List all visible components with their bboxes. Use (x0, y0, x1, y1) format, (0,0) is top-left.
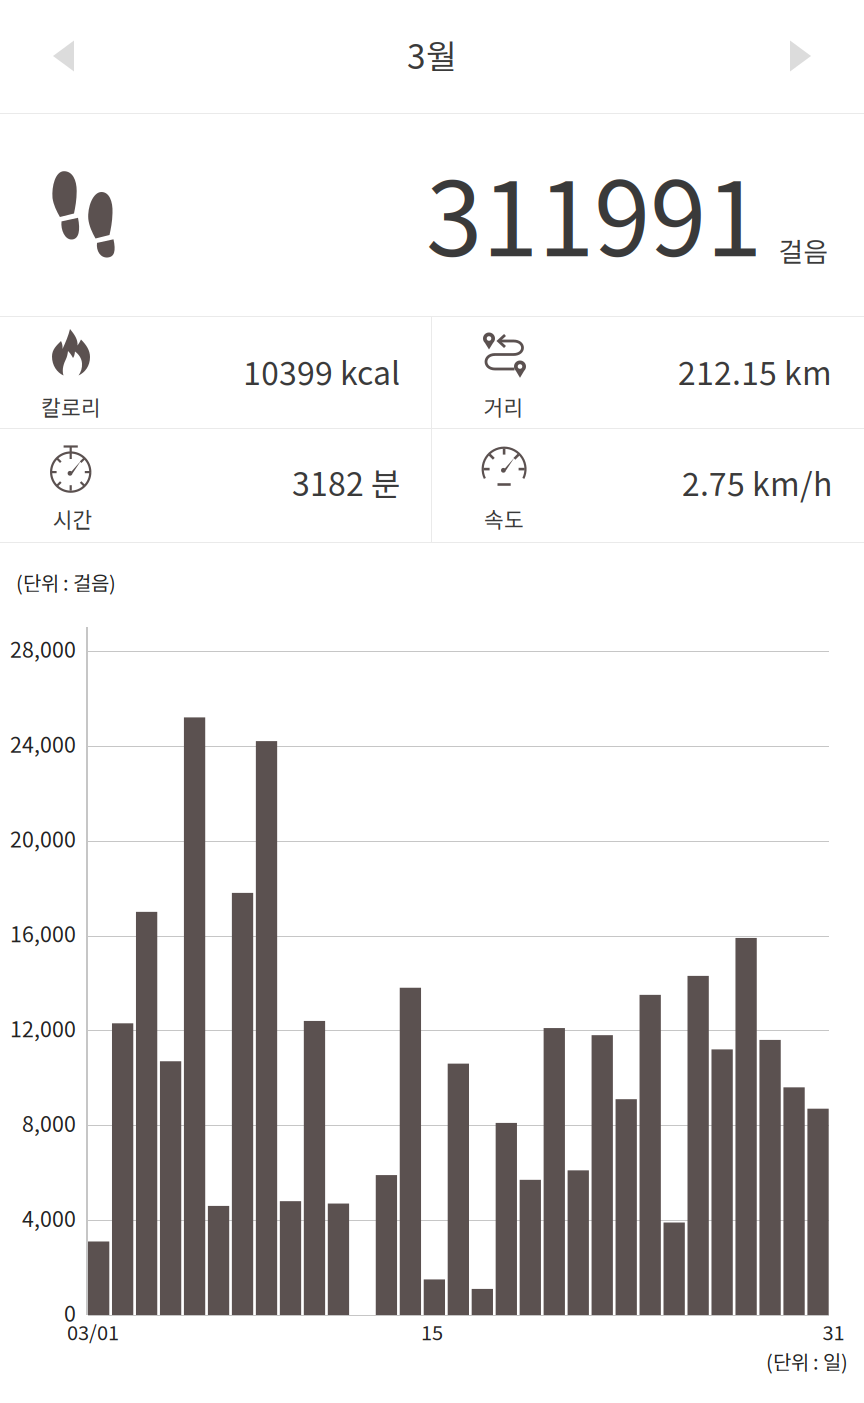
staticText: 시간 (52, 503, 92, 533)
staticText: 12,000 (10, 1013, 76, 1043)
staticText: 20,000 (10, 823, 76, 853)
staticText: 속도 (484, 503, 524, 533)
staticText: 4,000 (22, 1203, 76, 1233)
staticText: 3182 분 (292, 459, 400, 505)
staticText: 2.75 km/h (682, 459, 832, 505)
staticText: 16,000 (10, 918, 76, 948)
staticText: 10399 kcal (243, 348, 400, 394)
staticText: 거리 (483, 391, 523, 421)
staticText: 28,000 (10, 633, 76, 663)
staticText: (단위 : 걸음) (16, 568, 116, 596)
staticText: 8,000 (22, 1108, 76, 1138)
button[interactable]: Previous month (0, 0, 126, 112)
staticText: 15 (421, 1317, 443, 1346)
staticText: 212.15 km (678, 348, 832, 394)
staticText: 31 (822, 1317, 844, 1346)
staticText: 걸음 (778, 231, 828, 269)
staticText: 0 (64, 1297, 76, 1327)
staticText: 311991 (426, 140, 762, 284)
staticText: (단위 : 일) (766, 1347, 848, 1375)
staticText: 03/01 (67, 1317, 119, 1346)
staticText: 3월 (407, 31, 457, 78)
button[interactable]: Next month (737, 0, 863, 112)
staticText: 24,000 (10, 728, 76, 758)
staticText: 칼로리 (41, 391, 101, 421)
